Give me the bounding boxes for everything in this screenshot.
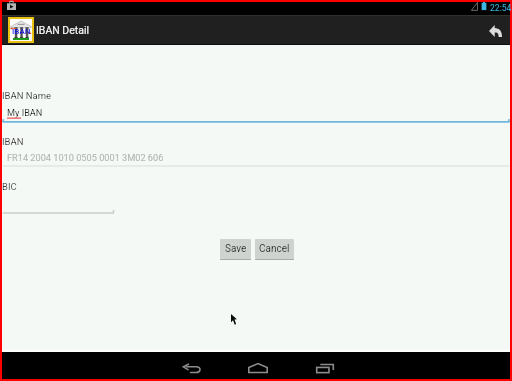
staticText: IBAN Name [2, 90, 52, 101]
button[interactable]: Home [236, 357, 280, 378]
staticText: FR14 2004 1010 0505 0001 3M02 606 [7, 152, 164, 163]
button[interactable]: Recents [303, 358, 347, 379]
button[interactable]: Back [170, 358, 214, 379]
staticText: IBAN Detail [36, 24, 90, 36]
staticText: My IBAN [7, 107, 43, 118]
staticText: BIC [2, 181, 17, 192]
button[interactable]: Save [220, 239, 251, 259]
staticText: 22:54 [490, 3, 512, 13]
button[interactable]: Back [474, 15, 510, 45]
staticText: Cancel [259, 243, 290, 255]
button[interactable]: Cancel [255, 239, 294, 259]
staticText: IBAN [12, 27, 31, 36]
staticText: Save [225, 243, 247, 255]
staticText: IBAN [2, 136, 24, 147]
